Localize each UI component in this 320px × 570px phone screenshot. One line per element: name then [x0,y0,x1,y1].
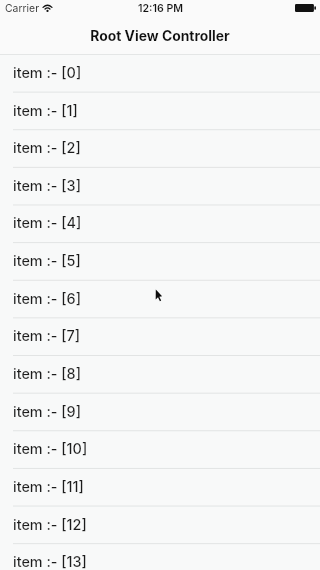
button[interactable]: item :- [0] [0,54,320,92]
other: Wi-Fi signal [43,5,52,13]
staticText: item :- [0] [13,64,82,81]
staticText: 12:16 PM [138,2,183,15]
staticText: item :- [9] [13,403,81,420]
button[interactable]: item :- [6] [0,280,320,318]
other: Battery full [295,4,316,12]
staticText: item :- [13] [13,553,87,570]
staticText: item :- [11] [13,478,84,495]
staticText: item :- [4] [13,214,82,231]
staticText: item :- [1] [13,102,78,119]
button[interactable]: item :- [4] [0,204,320,242]
button[interactable]: item :- [10] [0,430,320,468]
staticText: Carrier [5,2,40,15]
staticText: item :- [7] [13,327,81,344]
staticText: Root View Controller [90,28,230,45]
button[interactable]: item :- [8] [0,355,320,393]
staticText: item :- [3] [13,177,81,194]
staticText: item :- [8] [13,365,81,382]
button[interactable]: item :- [3] [0,167,320,205]
button[interactable]: item :- [11] [0,468,320,506]
button[interactable]: item :- [13] [0,543,320,570]
staticText: item :- [5] [13,252,81,269]
button[interactable]: item :- [1] [0,92,320,130]
staticText: item :- [10] [13,440,88,457]
staticText: item :- [12] [13,516,87,533]
button[interactable]: item :- [7] [0,317,320,355]
staticText: item :- [6] [13,290,81,307]
button[interactable]: item :- [5] [0,242,320,280]
button[interactable]: item :- [2] [0,129,320,167]
staticText: item :- [2] [13,139,81,156]
button[interactable]: item :- [9] [0,393,320,431]
button[interactable]: item :- [12] [0,506,320,544]
